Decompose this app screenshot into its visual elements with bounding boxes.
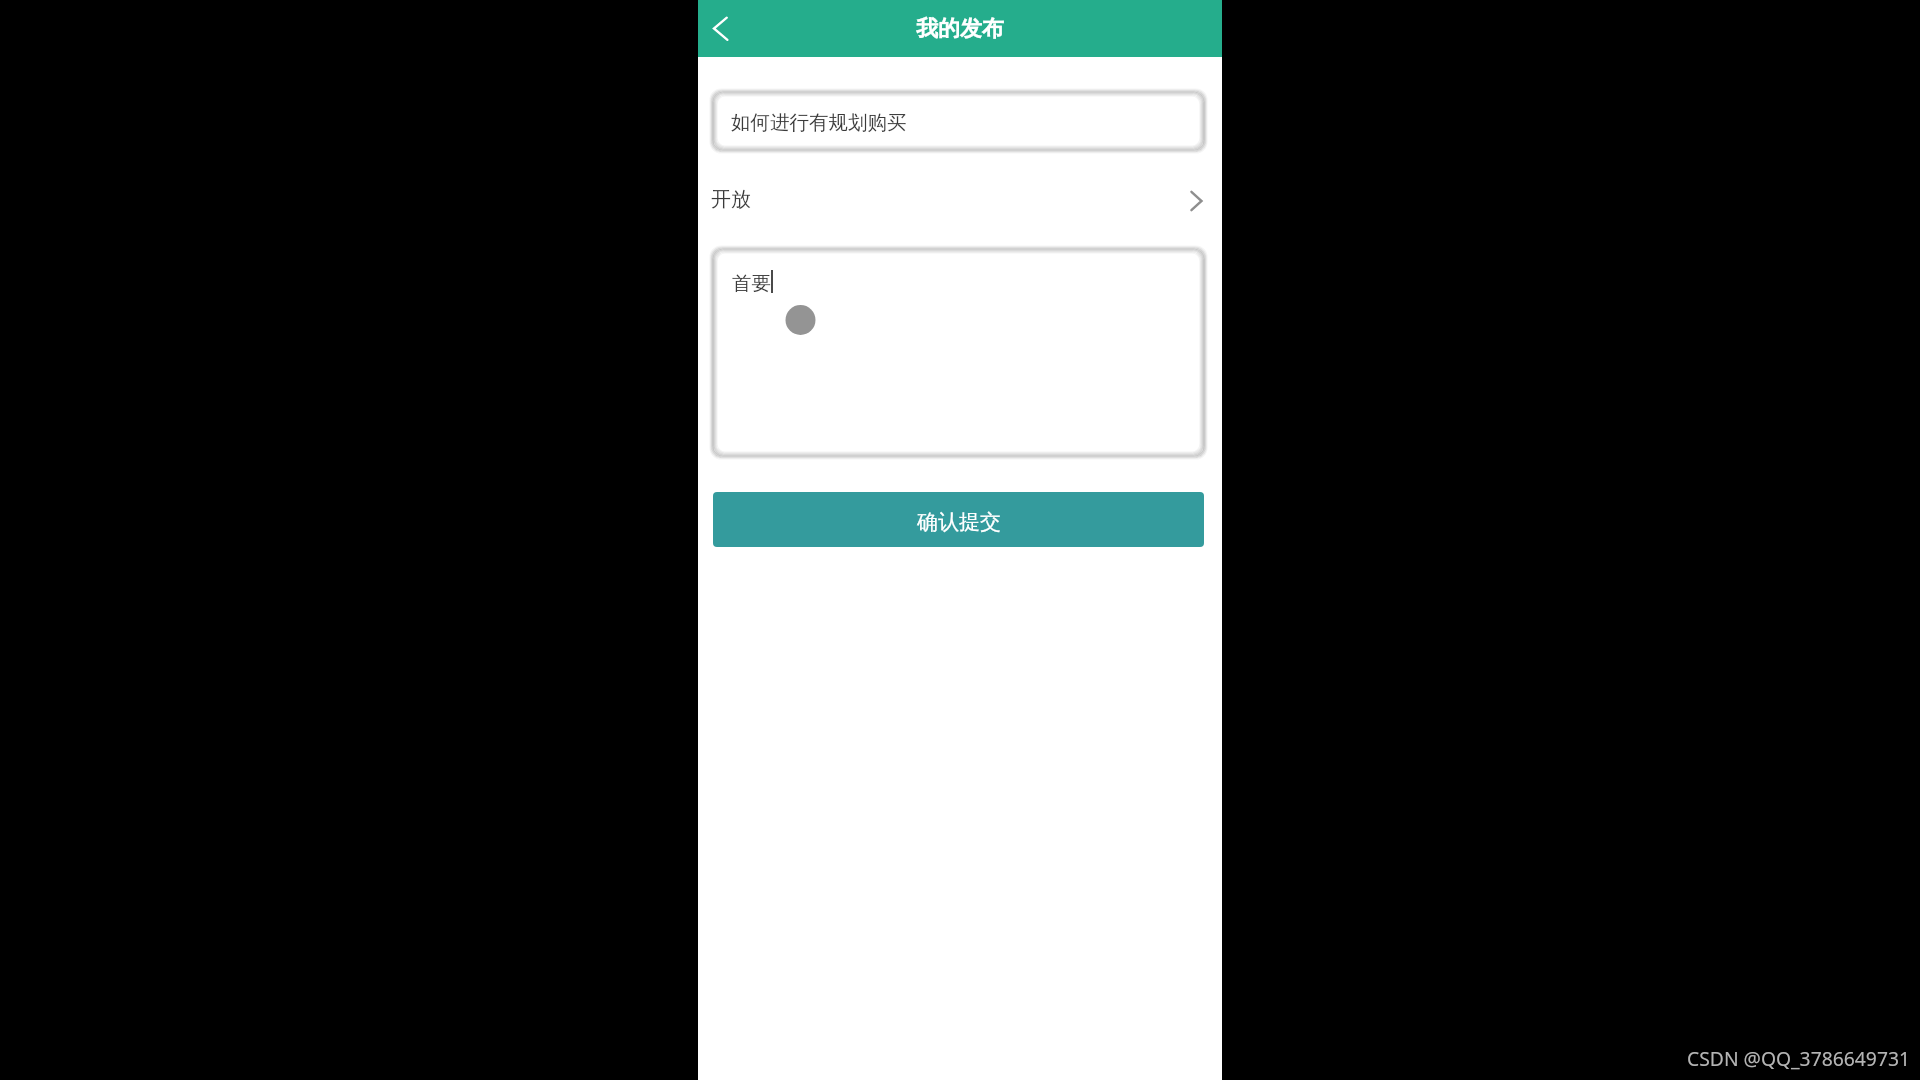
staticText: 确认提交 [917,509,1001,535]
button[interactable]: Title [713,92,1204,150]
button[interactable]: 确认提交 [713,492,1204,547]
button[interactable]: Back [698,7,742,51]
button[interactable]: 开放 [698,153,1222,246]
staticText: 我的发布 [916,15,1004,43]
staticText: CSDN @QQ_3786649731 [1687,1045,1910,1071]
button[interactable]: Body [713,249,1204,456]
staticText: 首要 [732,271,771,296]
staticText: 开放 [711,187,751,212]
staticText: 如何进行有规划购买 [731,110,907,135]
